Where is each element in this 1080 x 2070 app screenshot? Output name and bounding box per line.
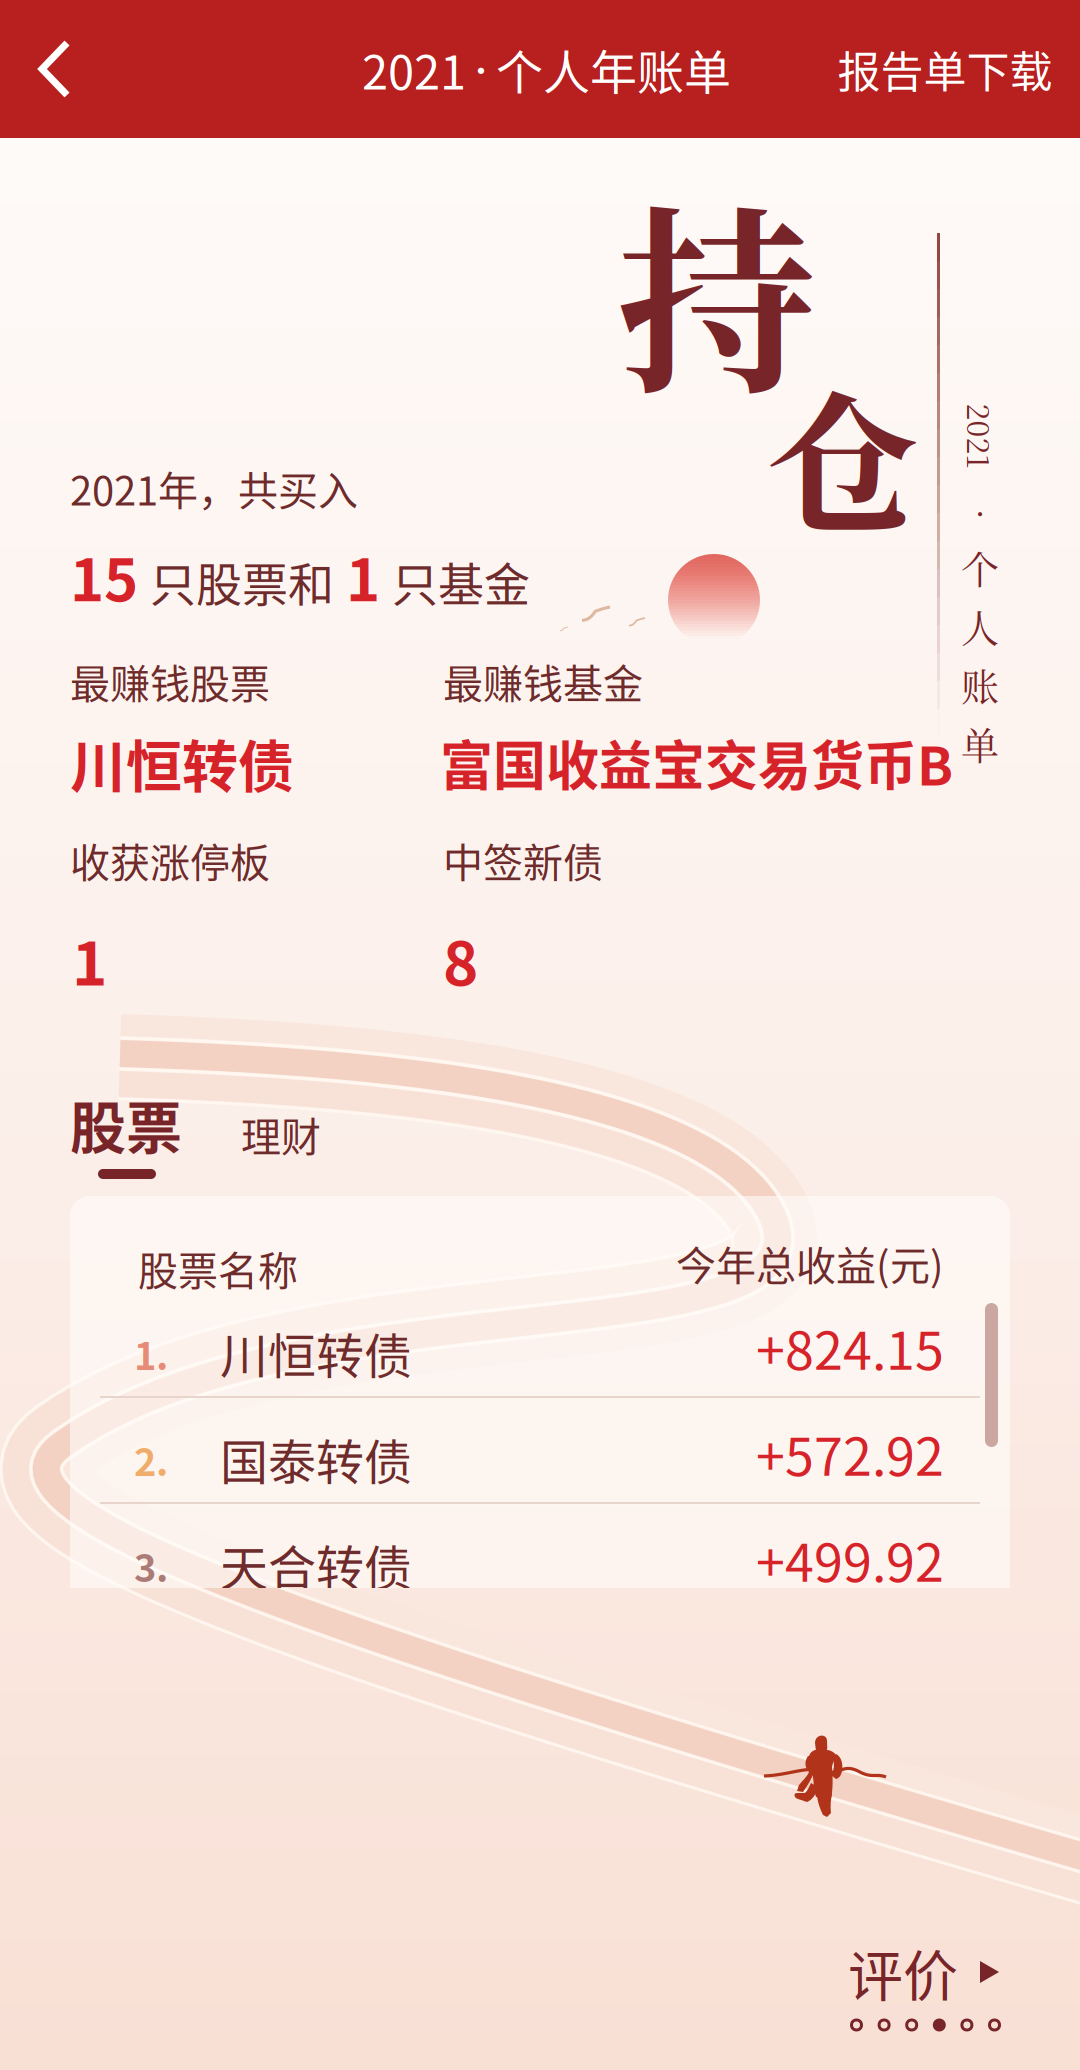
staticText: 今年总收益(元) <box>676 1234 944 1292</box>
staticText: 1 <box>72 916 107 1003</box>
staticText: 股票 <box>70 1083 182 1165</box>
button[interactable]: 2021 <box>362 0 762 138</box>
staticText: 川恒转债 <box>220 1318 412 1387</box>
staticText: 2021 <box>947 414 1012 457</box>
button[interactable]: 股票 <box>70 1086 200 1162</box>
staticText: 天合转债 <box>220 1530 412 1599</box>
button[interactable]: Back <box>0 0 110 138</box>
staticText: 收获涨停板 <box>70 831 270 889</box>
staticText: 只股票和 <box>150 548 334 614</box>
staticText: 人 <box>961 598 999 653</box>
staticText: 国泰转债 <box>220 1424 412 1493</box>
button[interactable]: 报告单下载 <box>830 0 1060 138</box>
staticText: 2021年，共买入 <box>70 459 358 517</box>
staticText: 2021 <box>362 35 466 103</box>
staticText: 中签新债 <box>443 831 603 889</box>
staticText: 15 <box>70 534 138 618</box>
staticText: 账 <box>961 657 999 712</box>
staticText: 最赚钱股票 <box>70 652 270 710</box>
staticText: 最赚钱基金 <box>443 652 643 710</box>
staticText: 2. <box>134 1432 168 1487</box>
button[interactable]: 理财 <box>241 1096 341 1172</box>
staticText: 理财 <box>241 1105 321 1163</box>
staticText: 富国收益宝交易货币B <box>440 724 953 801</box>
staticText: 评价 <box>848 1932 958 2012</box>
button[interactable]: 评价 <box>848 1934 1048 2010</box>
staticText: 单 <box>961 716 999 770</box>
staticText: · <box>466 47 496 91</box>
staticText: 个 <box>961 540 999 594</box>
button[interactable]: 3. <box>70 1530 1010 1588</box>
staticText: +572.92 <box>756 1415 944 1491</box>
staticText: 仓 <box>767 346 919 564</box>
staticText: 1. <box>134 1326 168 1381</box>
staticText: +499.92 <box>756 1521 944 1597</box>
staticText: 8 <box>443 916 478 1003</box>
staticText: 持 <box>617 147 815 431</box>
staticText: 股票名称 <box>138 1239 298 1297</box>
staticText: +824.15 <box>756 1309 944 1385</box>
staticText: 个人年账单 <box>496 35 731 103</box>
staticText: 3. <box>134 1538 168 1593</box>
button[interactable]: 1. <box>70 1318 1010 1376</box>
button[interactable]: 2. <box>70 1424 1010 1482</box>
staticText: · <box>974 487 985 536</box>
staticText: 只基金 <box>392 548 530 614</box>
staticText: 1 <box>346 534 380 618</box>
staticText: 报告单下载 <box>837 38 1052 100</box>
staticText: 川恒转债 <box>70 722 294 803</box>
